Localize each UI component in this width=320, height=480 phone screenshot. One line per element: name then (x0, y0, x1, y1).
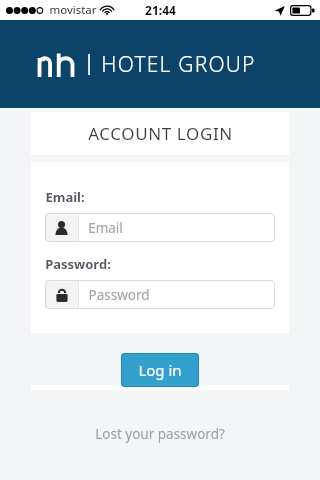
staticText: HOTEL GROUP (101, 50, 256, 79)
staticText: Email (88, 219, 123, 237)
staticText: 21:44 (145, 2, 176, 18)
staticText: ACCOUNT LOGIN (88, 122, 233, 145)
staticText: Log in (138, 360, 182, 380)
staticText: Password (88, 286, 150, 304)
button[interactable]: Log in (121, 353, 199, 387)
button[interactable]: Lost your password? (0, 425, 320, 443)
staticText: Email: (45, 188, 85, 206)
staticText: Password: (45, 255, 111, 273)
button[interactable]: Email (45, 213, 275, 242)
staticText: Lost your password? (95, 425, 225, 443)
staticText: movistar (49, 2, 97, 18)
button[interactable]: Password (45, 280, 275, 309)
